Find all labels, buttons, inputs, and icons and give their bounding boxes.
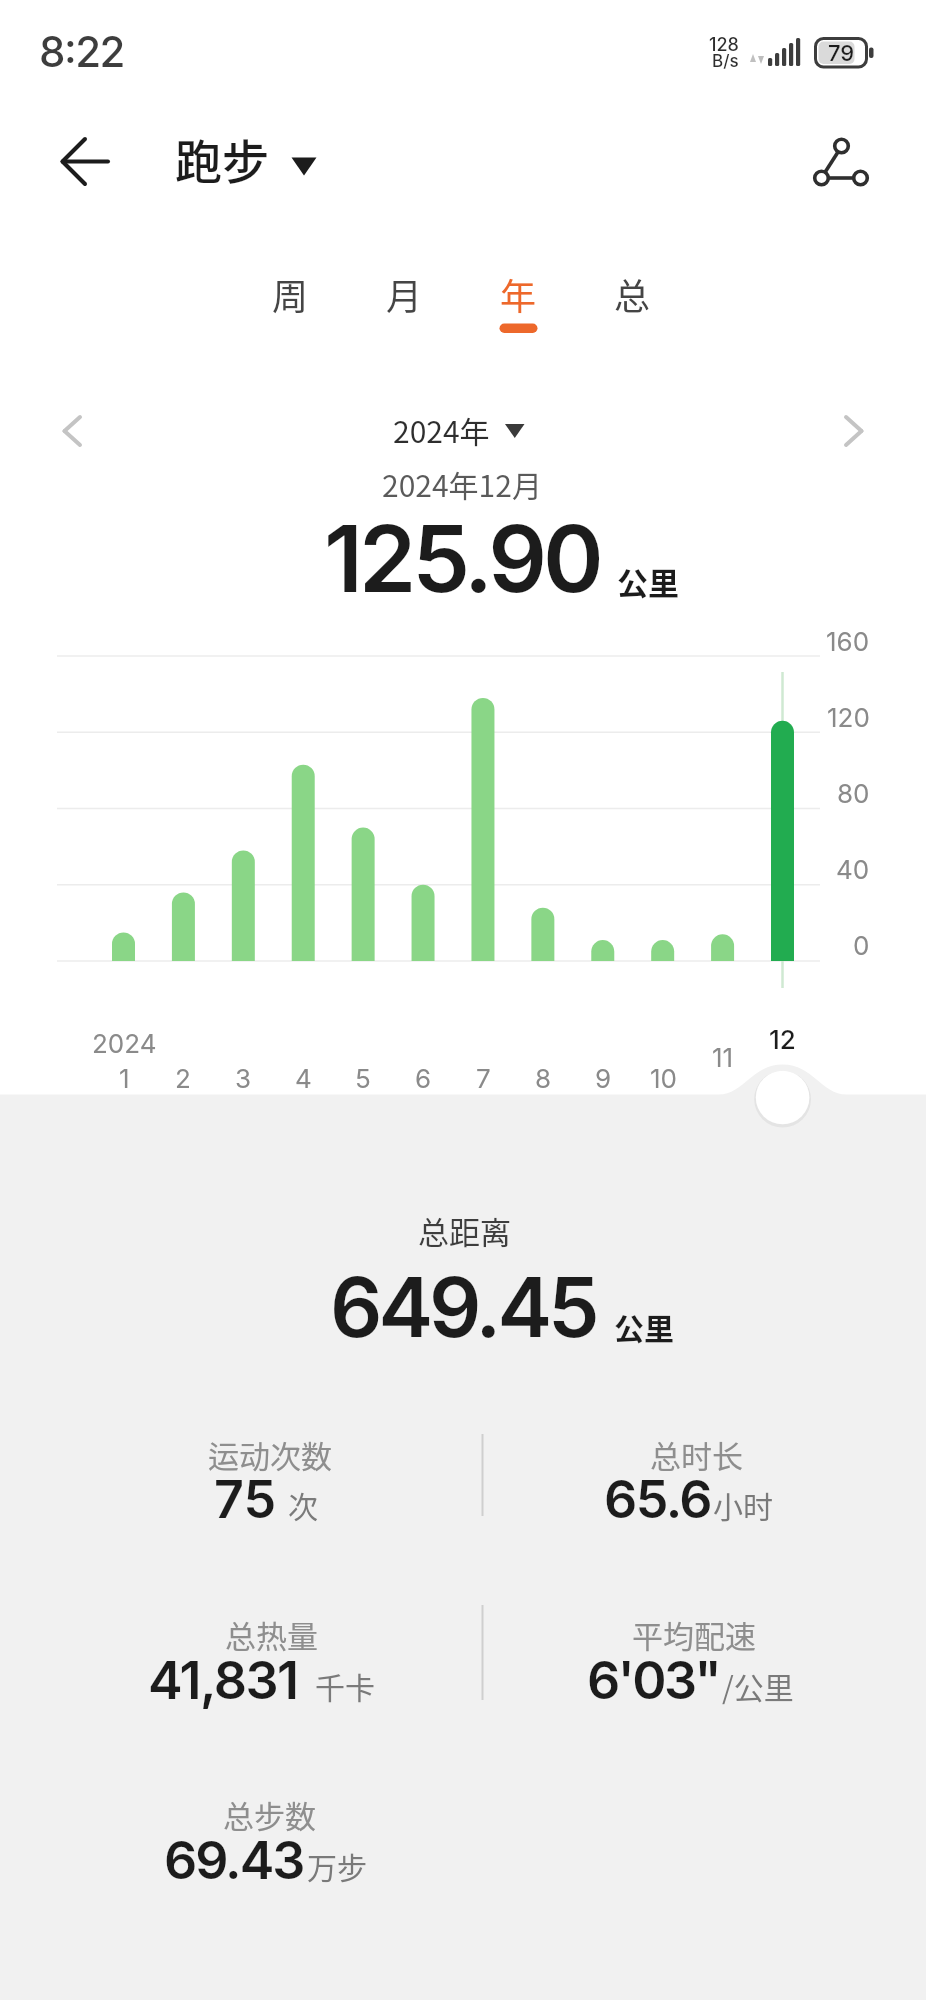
staticText: 40 — [836, 854, 870, 885]
staticText: 41,831 — [148, 1649, 298, 1712]
staticText: 125.90 — [324, 503, 600, 614]
staticText: 80 — [837, 778, 870, 809]
button[interactable] — [366, 266, 438, 342]
staticText: 总时长 — [650, 1432, 743, 1477]
button[interactable] — [388, 408, 538, 452]
staticText: 120 — [827, 702, 870, 733]
button[interactable] — [803, 133, 879, 191]
button[interactable] — [48, 403, 96, 459]
staticText: 运动次数 — [208, 1432, 332, 1477]
staticText: 次 — [288, 1483, 318, 1526]
staticText: 8:22 — [39, 26, 124, 77]
staticText: 160 — [826, 626, 870, 657]
button[interactable] — [480, 266, 552, 342]
staticText: 总 — [614, 268, 651, 320]
staticText: 128 — [709, 34, 739, 56]
staticText: 65.6 — [604, 1468, 712, 1531]
staticText: 万步 — [307, 1844, 367, 1887]
staticText: 649.45 — [330, 1258, 596, 1357]
staticText: 年 — [500, 268, 537, 320]
staticText: 总步数 — [223, 1792, 316, 1837]
staticText: 4 — [295, 1063, 312, 1094]
staticText: /公里 — [722, 1664, 794, 1707]
staticText: 6 — [415, 1063, 432, 1094]
staticText: 2024年12月 — [382, 462, 542, 505]
staticText: 6'03" — [587, 1649, 720, 1712]
staticText: 公里 — [617, 559, 679, 604]
button[interactable] — [48, 133, 114, 191]
staticText: 5 — [355, 1063, 371, 1094]
staticText: 总热量 — [225, 1612, 318, 1657]
staticText: 总距离 — [418, 1208, 511, 1253]
staticText: 公里 — [614, 1305, 674, 1348]
staticText: 月 — [386, 268, 423, 320]
staticText: 周 — [272, 268, 309, 320]
staticText: 8 — [535, 1063, 552, 1094]
staticText: 跑步 — [175, 124, 269, 192]
button[interactable] — [754, 1069, 811, 1126]
staticText: 0 — [853, 930, 870, 961]
button[interactable] — [830, 403, 878, 459]
button[interactable] — [252, 266, 324, 342]
staticText: 12 — [769, 1024, 796, 1055]
button[interactable] — [594, 266, 666, 342]
staticText: 小时 — [713, 1483, 773, 1526]
staticText: 7 — [476, 1063, 491, 1094]
staticText: 3 — [235, 1063, 252, 1094]
staticText: 9 — [595, 1063, 612, 1094]
staticText: 79 — [828, 40, 855, 67]
staticText: 10 — [650, 1063, 677, 1094]
staticText: 千卡 — [315, 1664, 375, 1707]
staticText: 1 — [119, 1063, 130, 1094]
staticText: 2024 — [92, 1028, 157, 1059]
button[interactable] — [168, 133, 324, 191]
staticText: 平均配速 — [632, 1612, 756, 1657]
staticText: 11 — [712, 1042, 734, 1073]
staticText: B/s — [712, 51, 739, 72]
staticText: 2024年 — [393, 408, 490, 451]
staticText: 2 — [175, 1063, 191, 1094]
staticText: 75 — [214, 1468, 277, 1531]
staticText: 69.43 — [164, 1829, 304, 1892]
